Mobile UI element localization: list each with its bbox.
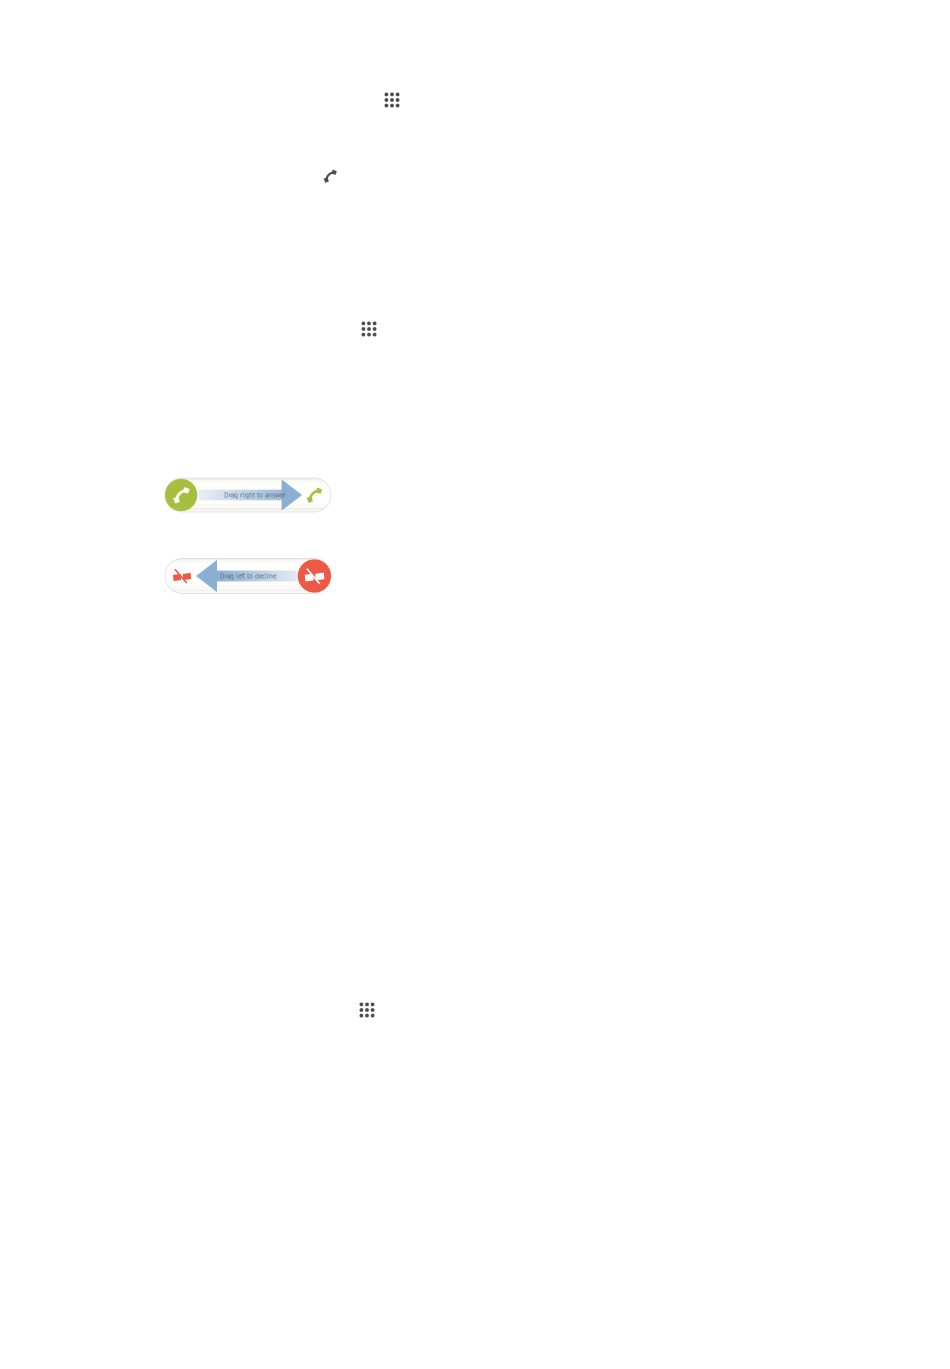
button[interactable]: Keypad (384, 92, 399, 107)
staticText: Drag right to answer (224, 491, 286, 499)
button[interactable]: Keypad (361, 321, 376, 336)
button[interactable]: Drag left to decline (165, 558, 331, 593)
button[interactable]: Keypad (359, 1002, 374, 1017)
button[interactable]: Call (323, 169, 337, 183)
staticText: Drag left to decline (220, 572, 276, 580)
button[interactable]: Drag right to answer (165, 478, 331, 512)
